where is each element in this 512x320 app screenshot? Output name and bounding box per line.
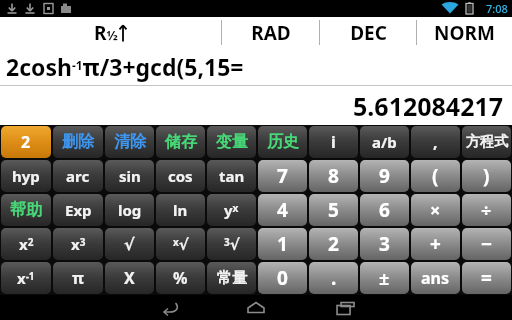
button[interactable]: 3 <box>360 228 409 260</box>
staticText: 9 <box>379 163 390 189</box>
staticText: × <box>430 198 441 223</box>
staticText: 常量 <box>217 269 247 288</box>
button[interactable]: . <box>309 262 358 294</box>
button[interactable]: cos <box>156 160 205 192</box>
staticText: sin <box>119 166 141 186</box>
button[interactable]: a/b <box>360 126 409 158</box>
staticText: 4 <box>277 197 288 223</box>
button[interactable]: RAD <box>222 17 320 48</box>
staticText: 5.612084217 <box>353 89 504 123</box>
button[interactable]: R½ <box>88 17 134 48</box>
button[interactable]: √ <box>105 228 154 260</box>
staticText: x2 <box>19 234 34 254</box>
staticText: π <box>72 267 84 289</box>
staticText: 删除 <box>62 132 94 152</box>
staticText: , <box>433 131 438 153</box>
staticText: 1 <box>277 231 288 257</box>
staticText: cos <box>168 166 193 186</box>
button[interactable]: tan <box>207 160 256 192</box>
button[interactable]: 0 <box>258 262 307 294</box>
button[interactable]: − <box>462 228 511 260</box>
button[interactable]: arc <box>53 160 103 192</box>
staticText: i <box>331 131 336 153</box>
staticText: 历史 <box>267 132 299 152</box>
button[interactable]: 9 <box>360 160 409 192</box>
button[interactable]: 4 <box>258 194 307 226</box>
button[interactable]: ans <box>411 262 460 294</box>
button[interactable]: 变量 <box>207 126 256 158</box>
staticText: 储存 <box>165 132 197 152</box>
staticText: x√ <box>173 235 189 254</box>
button[interactable]: i <box>309 126 358 158</box>
staticText: ) <box>483 163 490 189</box>
button[interactable]: 7 <box>258 160 307 192</box>
staticText: = <box>481 265 492 291</box>
staticText: R½ <box>94 20 118 46</box>
button[interactable]: 2 <box>1 126 51 158</box>
staticText: 7:08 <box>486 1 508 16</box>
staticText: ÷ <box>481 198 492 223</box>
button[interactable]: NORM <box>417 17 512 48</box>
button[interactable]: hyp <box>1 160 51 192</box>
staticText: log <box>118 200 142 220</box>
button[interactable]: , <box>411 126 460 158</box>
button[interactable]: 储存 <box>156 126 205 158</box>
staticText: yx <box>224 200 239 220</box>
staticText: 5 <box>328 197 339 223</box>
staticText: 6 <box>379 197 390 223</box>
button[interactable]: X <box>105 262 154 294</box>
button[interactable]: π <box>53 262 103 294</box>
staticText: ans <box>421 267 450 289</box>
staticText: RAD <box>251 20 291 46</box>
button[interactable]: log <box>105 194 154 226</box>
button[interactable]: = <box>462 262 511 294</box>
staticText: 2cosh-1π/3+gcd(5,15= <box>6 51 244 82</box>
button[interactable]: x cubed <box>53 228 103 260</box>
button[interactable]: 5 <box>309 194 358 226</box>
button[interactable]: 8 <box>309 160 358 192</box>
button[interactable]: x root <box>156 228 205 260</box>
staticText: x3 <box>71 234 86 254</box>
staticText: ± <box>379 266 390 291</box>
staticText: + <box>430 231 441 257</box>
button[interactable]: 删除 <box>53 126 103 158</box>
button[interactable]: sin <box>105 160 154 192</box>
staticText: 2 <box>328 231 339 257</box>
button[interactable]: ) <box>462 160 511 192</box>
button[interactable]: + <box>411 228 460 260</box>
button[interactable]: cube root <box>207 228 256 260</box>
button[interactable]: 清除 <box>105 126 154 158</box>
staticText: Exp <box>65 200 92 220</box>
button[interactable]: DEC <box>320 17 417 48</box>
staticText: hyp <box>12 166 40 186</box>
button[interactable]: 帮助 <box>1 194 51 226</box>
button[interactable]: 常量 <box>207 262 256 294</box>
button[interactable]: ± <box>360 262 409 294</box>
staticText: ( <box>432 163 439 189</box>
button[interactable]: 方程式 <box>462 126 511 158</box>
button[interactable]: ( <box>411 160 460 192</box>
button[interactable]: Exp <box>53 194 103 226</box>
button[interactable]: ÷ <box>462 194 511 226</box>
staticText: . <box>331 265 337 291</box>
staticText: − <box>481 231 493 257</box>
button[interactable]: x squared <box>1 228 51 260</box>
button[interactable]: ln <box>156 194 205 226</box>
button[interactable]: y^x <box>207 194 256 226</box>
button[interactable]: 1 <box>258 228 307 260</box>
staticText: a/b <box>372 132 397 152</box>
staticText: ln <box>173 200 188 220</box>
staticText: 3 <box>379 231 390 257</box>
button[interactable]: x inverse <box>1 262 51 294</box>
staticText: tan <box>219 166 245 186</box>
button[interactable]: 历史 <box>258 126 307 158</box>
staticText: 清除 <box>114 132 146 152</box>
button[interactable]: × <box>411 194 460 226</box>
button[interactable]: % <box>156 262 205 294</box>
staticText: 7 <box>277 163 288 189</box>
button[interactable]: 2 <box>309 228 358 260</box>
staticText: √ <box>124 235 135 254</box>
staticText: arc <box>66 166 90 186</box>
staticText: 帮助 <box>10 200 42 220</box>
button[interactable]: 6 <box>360 194 409 226</box>
